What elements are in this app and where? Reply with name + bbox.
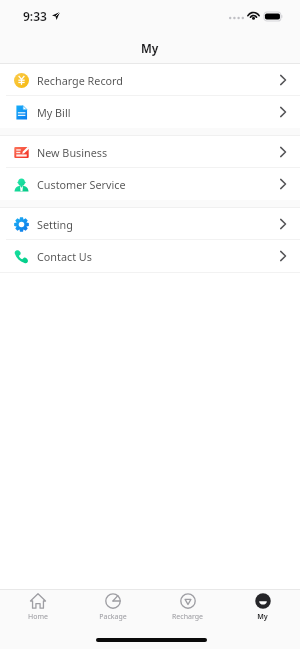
staticText: Package: [99, 612, 127, 622]
other: Package: [105, 593, 121, 609]
staticText: My: [141, 41, 159, 57]
other: My: [255, 593, 271, 609]
button[interactable]: Recharge: [150, 593, 225, 622]
staticText: New Business: [37, 145, 108, 160]
staticText: Customer Service: [37, 177, 126, 192]
staticText: Recharge Record: [37, 73, 124, 88]
button[interactable]: Package: [75, 593, 150, 622]
button[interactable]: Contact Us: [0, 240, 300, 272]
staticText: My: [257, 612, 268, 622]
staticText: Home: [28, 612, 48, 622]
other: Home: [30, 593, 46, 609]
button[interactable]: Customer Service: [0, 168, 300, 200]
staticText: Setting: [37, 217, 73, 232]
button[interactable]: Recharge Record: [0, 64, 300, 96]
button[interactable]: My Bill: [0, 96, 300, 128]
button[interactable]: Setting: [0, 208, 300, 240]
staticText: 9:33: [23, 8, 47, 24]
other: Recharge: [180, 593, 196, 609]
staticText: Recharge: [172, 612, 203, 622]
button[interactable]: Home: [0, 593, 75, 622]
staticText: My Bill: [37, 105, 71, 120]
button[interactable]: New Business: [0, 136, 300, 168]
button[interactable]: My: [225, 593, 300, 622]
staticText: Contact Us: [37, 249, 92, 264]
